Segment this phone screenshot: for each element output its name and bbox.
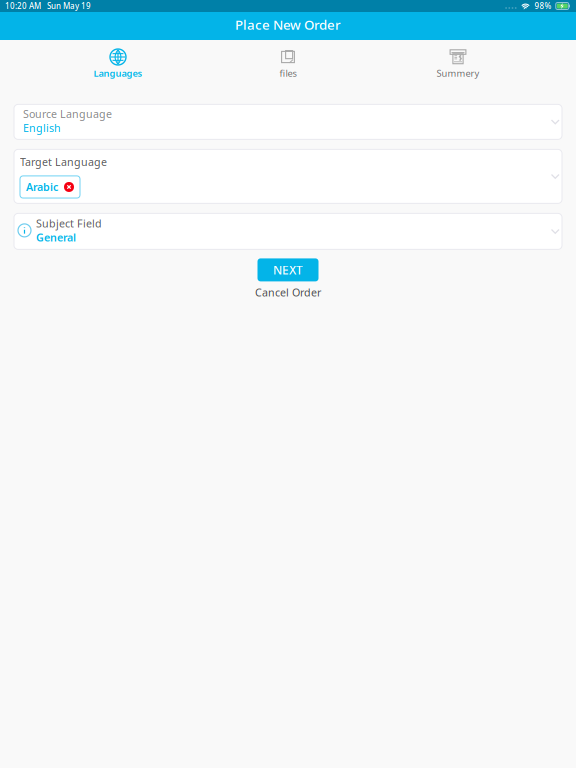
- staticText: Subject Field: [36, 216, 102, 230]
- staticText: Languages: [93, 67, 142, 79]
- staticText: 98%: [534, 1, 551, 11]
- button[interactable]: NEXT: [257, 258, 318, 281]
- staticText: Summery: [436, 67, 479, 79]
- staticText: Target Language: [20, 155, 107, 169]
- staticText: General: [36, 230, 76, 245]
- button[interactable]: Cancel Order: [255, 281, 321, 300]
- staticText: Cancel Order: [255, 285, 321, 300]
- staticText: Source Language: [23, 107, 112, 121]
- staticText: Place New Order: [235, 16, 341, 33]
- button[interactable]: Source Language: [14, 104, 562, 139]
- staticText: Sun May 19: [47, 1, 91, 11]
- staticText: files: [279, 67, 296, 79]
- button[interactable]: files: [240, 43, 336, 85]
- staticText: Arabic: [26, 180, 58, 194]
- button[interactable]: Languages: [70, 43, 166, 85]
- button[interactable]: Target Language: [14, 149, 562, 203]
- staticText: 10:20 AM: [5, 1, 41, 11]
- button[interactable]: Subject Field: [14, 213, 562, 249]
- button[interactable]: Summery: [410, 43, 506, 85]
- staticText: NEXT: [273, 262, 303, 278]
- staticText: English: [23, 121, 61, 135]
